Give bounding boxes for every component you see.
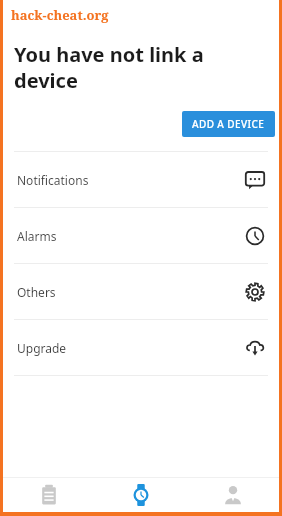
staticText: You have not link a device xyxy=(14,41,204,94)
staticText: Others xyxy=(17,284,56,300)
staticText: Upgrade xyxy=(17,340,67,356)
button[interactable]: Watch xyxy=(95,478,187,512)
button[interactable]: ADD A DEVICE xyxy=(182,111,275,137)
button[interactable]: Profile xyxy=(187,478,279,512)
staticText: Notifications xyxy=(17,172,89,188)
staticText: Alarms xyxy=(17,228,57,244)
button[interactable]: Records xyxy=(3,478,95,512)
button[interactable]: Others xyxy=(3,264,279,319)
button[interactable]: Alarms xyxy=(3,208,279,263)
staticText: ADD A DEVICE xyxy=(192,117,265,131)
button[interactable]: Notifications xyxy=(3,152,279,207)
button[interactable]: Upgrade xyxy=(3,320,279,375)
staticText: hack-cheat.org xyxy=(11,6,109,24)
